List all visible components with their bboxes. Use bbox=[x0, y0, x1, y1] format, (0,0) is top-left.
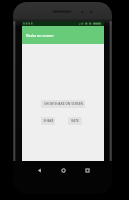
button[interactable]: SHAKE bbox=[41, 117, 55, 125]
button[interactable]: Recents bbox=[80, 163, 94, 177]
staticText: Shake on screen bbox=[26, 33, 54, 38]
staticText: SHOW SHAKE ON SCREEN bbox=[44, 102, 83, 106]
button[interactable]: Home bbox=[56, 163, 70, 177]
button[interactable]: RATE bbox=[68, 117, 82, 125]
staticText: SHAKE bbox=[43, 119, 54, 123]
button[interactable]: Back bbox=[32, 163, 46, 177]
staticText: RATE bbox=[71, 119, 79, 123]
button[interactable]: SHOW SHAKE ON SCREEN bbox=[41, 100, 85, 108]
